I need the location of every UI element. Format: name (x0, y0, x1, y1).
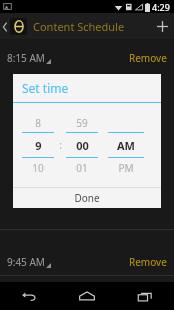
staticText: PM (118, 161, 134, 175)
staticText: Done (74, 191, 100, 205)
staticText: Remove (129, 51, 167, 65)
staticText: 9:45 AM (7, 255, 45, 269)
button[interactable]: Home (58, 282, 116, 310)
staticText: 00 (76, 138, 89, 153)
button[interactable]: 10 (22, 158, 54, 177)
button[interactable]: PM (108, 158, 144, 177)
button[interactable]: Done (13, 188, 161, 208)
button[interactable]: 01 (66, 158, 98, 177)
button[interactable]: Up (0, 18, 127, 35)
button[interactable]: AM (108, 133, 144, 157)
staticText: 9 (35, 138, 42, 153)
staticText: 8 (35, 116, 41, 130)
button[interactable]: 8 (22, 113, 54, 132)
staticText: Content Schedule (33, 19, 125, 34)
staticText: : (59, 138, 62, 152)
staticText: 59 (76, 116, 88, 130)
button[interactable]: Recent apps (116, 282, 174, 310)
button[interactable]: 00 (66, 133, 98, 157)
staticText: 10 (32, 161, 44, 175)
button[interactable]: Back (0, 282, 58, 310)
button[interactable]: 9 (22, 133, 54, 157)
staticText: 01 (76, 161, 88, 175)
staticText: 4:29 (152, 1, 170, 13)
staticText: AM (117, 138, 135, 153)
button[interactable]: 8:15 AM (0, 44, 174, 71)
staticText: Remove (129, 255, 167, 269)
button[interactable]: 59 (66, 113, 98, 132)
button[interactable]: Add schedule (150, 14, 174, 38)
staticText: Set time (22, 80, 69, 96)
staticText: 8:15 AM (7, 51, 45, 65)
button[interactable]: 9:45 AM (0, 248, 174, 275)
